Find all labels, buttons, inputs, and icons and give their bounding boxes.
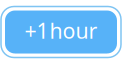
staticText: hour bbox=[49, 16, 97, 45]
staticText: +1 bbox=[24, 16, 48, 45]
button[interactable]: +1 bbox=[1, 6, 121, 57]
